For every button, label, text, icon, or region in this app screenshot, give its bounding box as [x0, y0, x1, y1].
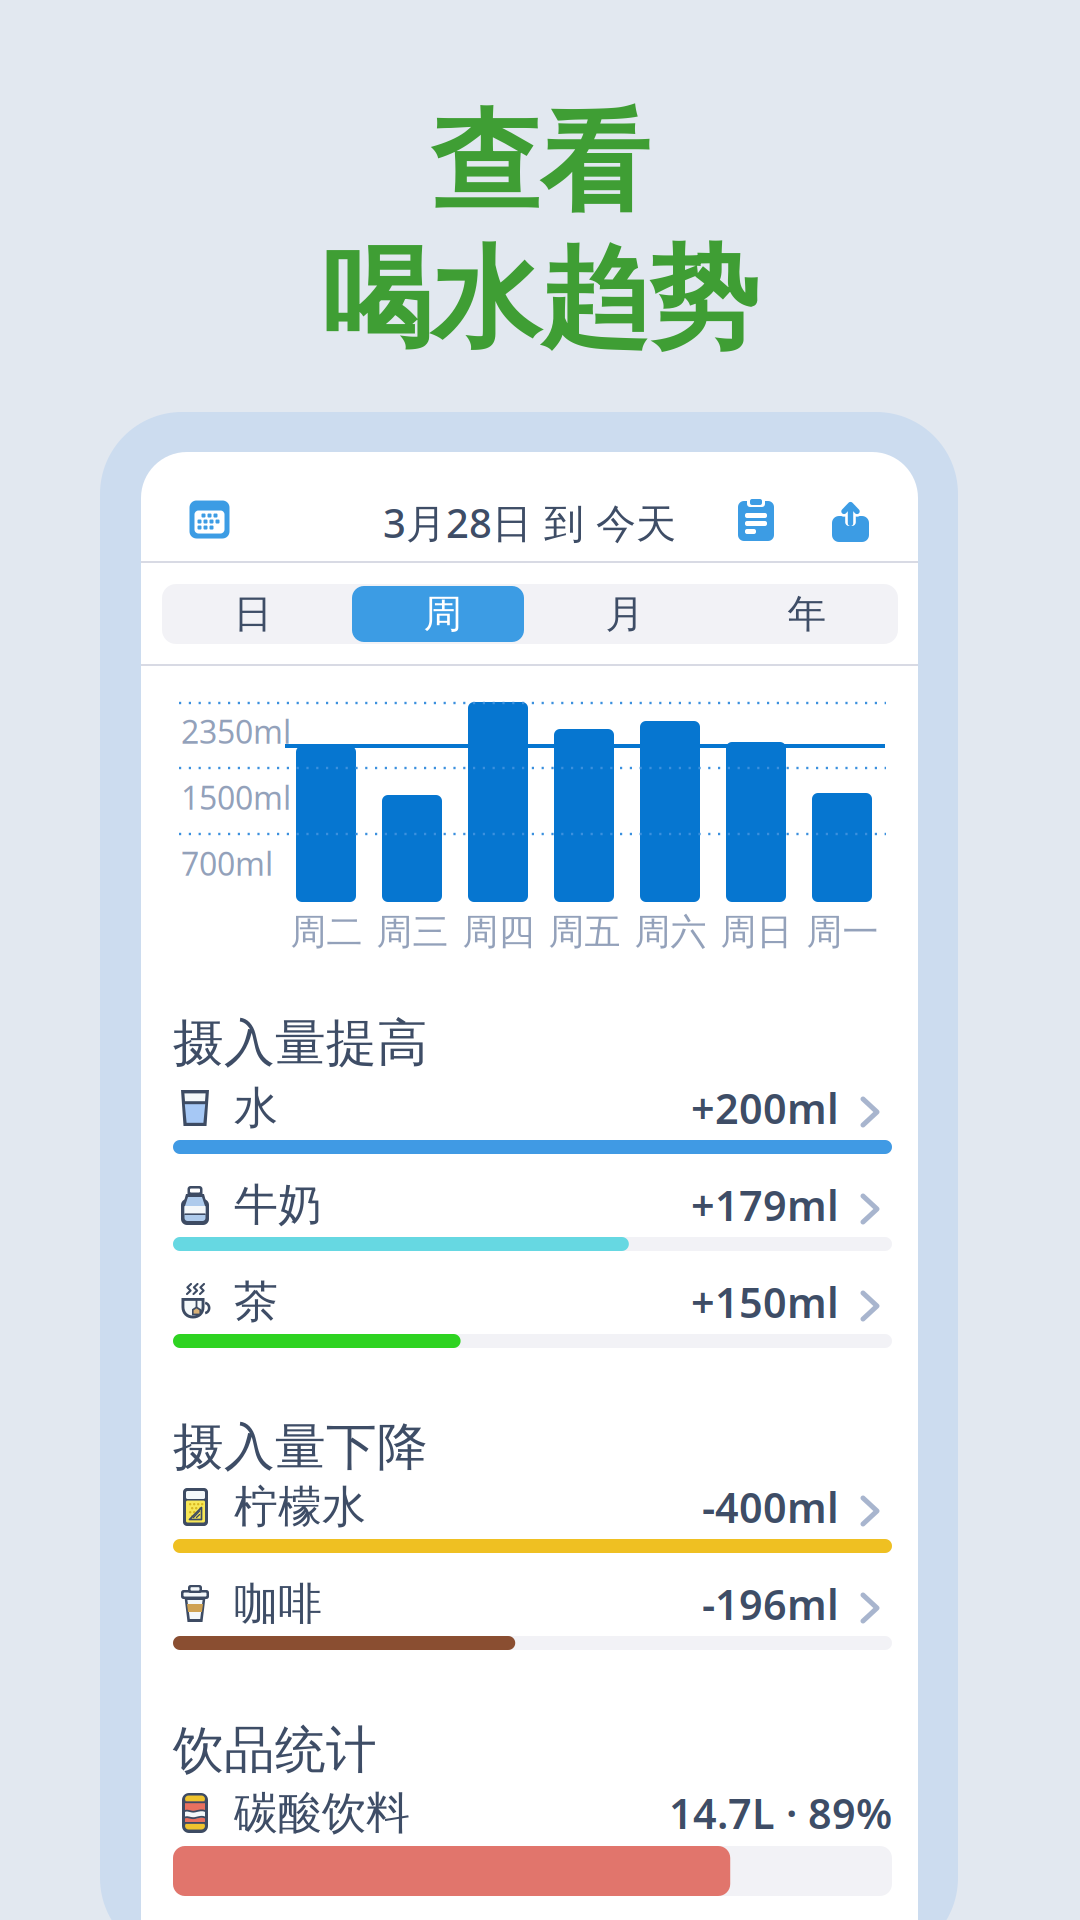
button[interactable]: 水: [173, 1088, 892, 1180]
staticText: 1500ml: [181, 776, 291, 818]
staticText: 周: [423, 590, 462, 638]
staticText: 茶: [234, 1275, 278, 1329]
staticText: 700ml: [181, 842, 273, 884]
staticText: 年: [787, 590, 826, 638]
staticText: +150ml: [691, 1275, 839, 1329]
staticText: 饮品统计: [173, 1719, 377, 1781]
staticText: 周日: [720, 910, 792, 954]
staticText: 月: [605, 590, 644, 638]
staticText: 喝水趋势: [322, 232, 758, 367]
button[interactable]: 日: [162, 585, 344, 643]
staticText: 牛奶: [234, 1178, 322, 1232]
staticText: +179ml: [691, 1178, 839, 1232]
staticText: 14.7L · 89%: [669, 1786, 892, 1840]
button[interactable]: 月: [534, 585, 716, 643]
staticText: +200ml: [691, 1081, 839, 1135]
staticText: 2350ml: [181, 710, 291, 752]
button[interactable]: 年: [716, 585, 898, 643]
staticText: -400ml: [702, 1480, 839, 1534]
staticText: 摄入量下降: [173, 1416, 428, 1478]
staticText: 周五: [548, 910, 620, 954]
staticText: 水: [234, 1081, 278, 1135]
button[interactable]: 记录: [738, 495, 774, 539]
staticText: 碳酸饮料: [234, 1786, 410, 1840]
staticText: 日: [233, 590, 272, 638]
button[interactable]: 碳酸饮料: [173, 1792, 892, 1916]
button[interactable]: 咖啡: [173, 1584, 892, 1676]
staticText: 周四: [462, 910, 534, 954]
button[interactable]: 日历: [190, 501, 229, 538]
staticText: 查看: [431, 96, 649, 230]
staticText: 周三: [376, 910, 448, 954]
button[interactable]: 分享: [832, 493, 869, 537]
staticText: 3月28日 到 今天: [383, 496, 676, 549]
staticText: 周一: [806, 910, 878, 954]
staticText: 周二: [290, 910, 362, 954]
staticText: 柠檬水: [234, 1480, 366, 1534]
staticText: -196ml: [702, 1577, 839, 1631]
button[interactable]: 牛奶: [173, 1185, 892, 1277]
staticText: 摄入量提高: [173, 1012, 428, 1074]
staticText: 周六: [634, 910, 706, 954]
button[interactable]: 柠檬水: [173, 1487, 892, 1579]
button[interactable]: 周: [352, 585, 534, 643]
staticText: 咖啡: [234, 1577, 322, 1631]
button[interactable]: 茶: [173, 1282, 892, 1374]
